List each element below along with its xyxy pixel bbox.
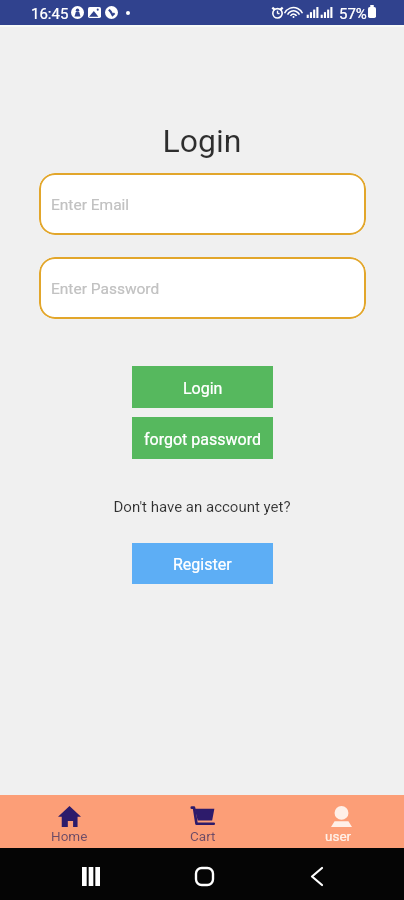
button[interactable]: user <box>273 795 404 848</box>
button[interactable]: Enter Password <box>39 257 366 319</box>
button[interactable]: Home <box>176 850 232 900</box>
staticText: Enter Email <box>51 196 130 214</box>
staticText: Login <box>0 122 404 160</box>
button[interactable]: Enter Email <box>39 173 366 235</box>
staticText: forgot password <box>144 430 261 449</box>
staticText: Enter Password <box>51 280 160 298</box>
button[interactable]: Login <box>132 366 273 408</box>
button[interactable]: Cart <box>138 795 267 848</box>
button[interactable]: Home <box>0 795 138 848</box>
staticText: Home <box>51 828 88 844</box>
staticText: 16:45 <box>31 5 69 23</box>
staticText: Login <box>183 379 223 398</box>
staticText: Register <box>173 555 232 574</box>
staticText: user <box>325 828 352 844</box>
button[interactable]: Back <box>289 850 345 900</box>
button[interactable]: Recent apps <box>63 850 119 900</box>
staticText: 57% <box>339 5 367 23</box>
staticText: Cart <box>190 828 216 844</box>
staticText: Don't have an account yet? <box>0 498 404 516</box>
button[interactable]: forgot password <box>132 417 273 459</box>
button[interactable]: Register <box>132 543 273 584</box>
